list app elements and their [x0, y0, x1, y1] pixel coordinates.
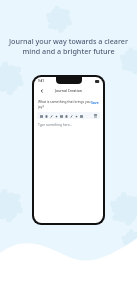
button[interactable]: Save — [91, 100, 99, 105]
button[interactable]: Back — [38, 87, 45, 94]
button[interactable]: Format option 6 — [64, 113, 69, 119]
button[interactable]: Type something here... — [34, 123, 103, 223]
staticText: Journal your way towards a clearer mind … — [0, 36, 137, 56]
staticText: What is something that brings you joy? — [38, 100, 91, 109]
button[interactable]: Format option 9 — [79, 113, 84, 119]
button[interactable]: Format option 1 — [39, 113, 44, 119]
staticText: Type something here... — [38, 123, 73, 127]
button[interactable]: Format option 2 — [44, 113, 49, 119]
button[interactable]: Format option 4 — [54, 113, 59, 119]
button[interactable]: Format option 3 — [49, 113, 54, 119]
button[interactable]: Format option 5 — [59, 113, 64, 119]
button[interactable]: Format option 8 — [74, 113, 79, 119]
staticText: Journal Creation — [55, 88, 82, 93]
button[interactable]: More options — [93, 113, 98, 118]
staticText: 9:41 — [38, 79, 44, 83]
button[interactable]: Format option 7 — [69, 113, 74, 119]
staticText: Save — [91, 100, 99, 105]
